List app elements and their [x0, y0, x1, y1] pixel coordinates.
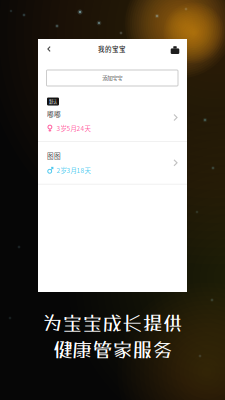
staticText: 添加宝宝: [102, 74, 122, 82]
staticText: 图图: [47, 151, 61, 160]
staticText: 我的宝宝: [98, 44, 126, 54]
staticText: 健康管家服务: [52, 338, 172, 361]
button[interactable]: 图图: [38, 142, 187, 184]
button[interactable]: Take photo: [167, 39, 183, 59]
staticText: 3岁5月24天: [56, 124, 90, 133]
button[interactable]: 默认: [38, 94, 187, 141]
staticText: 默认: [49, 98, 57, 105]
button[interactable]: Back: [41, 39, 57, 59]
staticText: 2岁3月18天: [56, 165, 90, 175]
staticText: 嘟嘟: [47, 109, 61, 119]
button[interactable]: 添加宝宝: [38, 59, 187, 86]
staticText: 为宝宝成长提供: [42, 311, 182, 335]
